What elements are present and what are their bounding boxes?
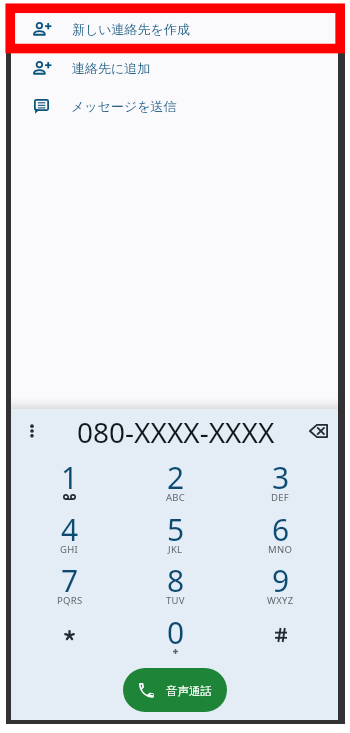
staticText: GHI xyxy=(60,543,79,556)
staticText: 7 xyxy=(61,560,79,601)
staticText: 音声通話 xyxy=(166,684,212,698)
staticText: 080-XXXX-XXXX xyxy=(77,413,275,451)
staticText: 8 xyxy=(167,560,185,601)
staticText: 新しい連絡先を作成 xyxy=(72,21,190,37)
button[interactable]: 5 xyxy=(123,503,228,555)
button[interactable]: Backspace xyxy=(303,416,333,446)
staticText: 4 xyxy=(61,509,79,550)
button[interactable]: Send message xyxy=(11,87,338,125)
staticText: 3 xyxy=(272,457,290,498)
button[interactable]: 0 xyxy=(123,606,228,658)
other: Add person xyxy=(33,59,51,77)
staticText: JKL xyxy=(168,543,183,556)
button[interactable]: 4 xyxy=(17,503,122,555)
button[interactable]: Add person xyxy=(11,49,338,87)
staticText: メッセージを送信 xyxy=(71,98,177,114)
staticText: 2 xyxy=(167,457,185,498)
staticText: MNO xyxy=(268,543,293,556)
staticText: PQRS xyxy=(57,594,83,607)
button[interactable]: 3 xyxy=(228,451,333,503)
staticText: ABC xyxy=(166,491,186,504)
staticText: TUV xyxy=(166,594,185,607)
staticText: 連絡先に追加 xyxy=(72,60,151,76)
button[interactable]: 8 xyxy=(123,554,228,606)
button[interactable]: 7 xyxy=(17,554,122,606)
button[interactable]: More options xyxy=(18,417,46,445)
button[interactable] xyxy=(228,606,333,658)
button[interactable]: Add person xyxy=(11,10,338,48)
other: More options xyxy=(24,423,40,439)
other: Send message xyxy=(34,99,49,114)
button[interactable]: 音声通話 xyxy=(123,668,227,712)
button[interactable]: 6 xyxy=(228,503,333,555)
button[interactable]: 2 xyxy=(123,451,228,503)
button[interactable]: 1 xyxy=(17,451,122,503)
staticText: 5 xyxy=(167,509,185,550)
other: Backspace xyxy=(309,424,328,438)
staticText: WXYZ xyxy=(267,594,294,607)
button[interactable]: 9 xyxy=(228,554,333,606)
staticText: 6 xyxy=(272,509,290,550)
staticText: 1 xyxy=(61,457,79,498)
other: Add person xyxy=(33,20,51,38)
staticText: DEF xyxy=(271,491,290,504)
staticText: 0 xyxy=(167,612,185,653)
staticText: 9 xyxy=(272,560,290,601)
button[interactable] xyxy=(17,606,122,658)
